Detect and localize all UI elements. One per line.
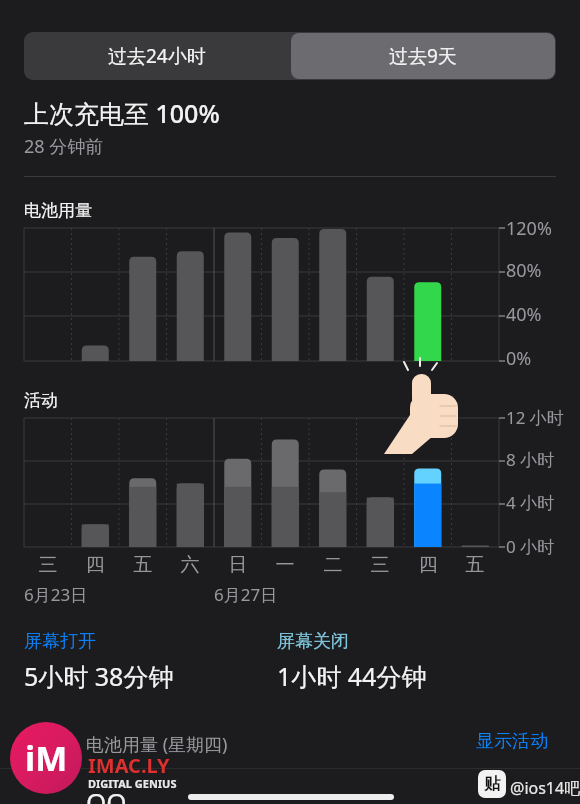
staticText: 六 bbox=[174, 553, 206, 577]
staticText: 1小时 44分钟 bbox=[277, 659, 427, 693]
staticText: IMAC.LY bbox=[88, 752, 170, 779]
staticText: 过去9天 bbox=[389, 43, 457, 69]
staticText: iM bbox=[25, 735, 68, 781]
staticText: 电池用量 (星期四) bbox=[86, 732, 228, 757]
staticText: 28 分钟前 bbox=[24, 134, 104, 159]
button[interactable]: 过去9天 bbox=[291, 33, 555, 79]
staticText: 40% bbox=[506, 302, 542, 327]
staticText: 电池用量 bbox=[24, 200, 92, 221]
staticText: 二 bbox=[317, 553, 349, 577]
staticText: 五 bbox=[459, 553, 491, 577]
staticText: 80% bbox=[506, 258, 542, 283]
staticText: QQ bbox=[86, 784, 127, 804]
staticText: 4 小时 bbox=[506, 491, 555, 514]
staticText: DIGITAL GENIUS bbox=[88, 776, 177, 791]
staticText: 6月27日 bbox=[214, 583, 278, 606]
staticText: @ios14吧 bbox=[510, 777, 580, 799]
button[interactable]: 显示活动 bbox=[476, 730, 548, 753]
button[interactable]: 过去24小时 bbox=[24, 32, 290, 80]
staticText: 四 bbox=[412, 553, 444, 577]
staticText: 三 bbox=[364, 553, 396, 577]
staticText: 一 bbox=[269, 553, 301, 577]
staticText: 日 bbox=[222, 553, 254, 577]
staticText: 8 小时 bbox=[506, 448, 555, 471]
staticText: 12 小时 bbox=[506, 406, 564, 429]
staticText: 三 bbox=[32, 553, 64, 577]
staticText: 5小时 38分钟 bbox=[24, 659, 174, 693]
staticText: 显示活动 bbox=[476, 730, 548, 753]
staticText: 五 bbox=[127, 553, 159, 577]
staticText: 120% bbox=[506, 216, 552, 241]
staticText: 活动 bbox=[24, 390, 58, 411]
staticText: 0 小时 bbox=[506, 535, 555, 558]
staticText: 屏幕打开 bbox=[24, 630, 96, 653]
staticText: 四 bbox=[79, 553, 111, 577]
staticText: 贴 bbox=[484, 774, 500, 794]
staticText: 0% bbox=[506, 346, 532, 371]
staticText: 屏幕关闭 bbox=[277, 630, 349, 653]
staticText: 6月23日 bbox=[24, 583, 88, 606]
staticText: 上次充电至 100% bbox=[24, 96, 220, 130]
staticText: 过去24小时 bbox=[108, 43, 206, 69]
